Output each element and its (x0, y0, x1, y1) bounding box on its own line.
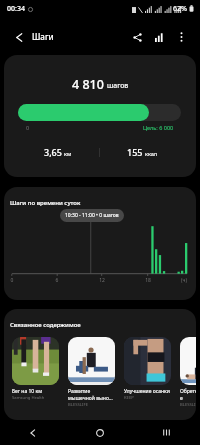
staticText: 18 (140, 277, 156, 284)
staticText: 0 (4, 277, 20, 284)
staticText: 10:30 - 11:00 • 0 шагов (65, 212, 119, 219)
button[interactable]: Развитие мышечной вынос... (68, 337, 115, 408)
staticText: BLESSLIFE (68, 402, 88, 408)
staticText: Samsung Health (12, 395, 45, 401)
staticText: (ч) (176, 277, 192, 284)
button[interactable]: More options (172, 28, 190, 46)
button[interactable]: Шаги по времени суток (4, 187, 196, 300)
staticText: 4 810 (72, 76, 104, 93)
staticText: 12 (94, 277, 110, 284)
staticText: ккал (145, 150, 158, 157)
button[interactable]: 4 810 (4, 55, 196, 177)
button[interactable]: Back (10, 28, 28, 46)
button[interactable]: Home (66, 420, 133, 445)
staticText: 3,65 (44, 146, 62, 158)
staticText: Развитие мышечной вынос... (68, 388, 115, 402)
button[interactable]: Recent apps (133, 420, 200, 445)
staticText: шагов (107, 81, 129, 91)
staticText: Шаги (32, 31, 54, 42)
staticText: Улучшение осанки (124, 388, 170, 395)
staticText: Шаги по времени суток (10, 199, 81, 207)
button[interactable]: Back (0, 420, 66, 445)
staticText: 62% (173, 4, 187, 14)
staticText: 0 (26, 124, 30, 131)
button[interactable]: Обретение стройности... (180, 337, 196, 408)
staticText: 00:34 (7, 4, 25, 14)
staticText: Бег на 10 км (12, 388, 42, 395)
button[interactable]: Share (128, 28, 146, 46)
staticText: KEEP (124, 395, 134, 401)
staticText: BLESSLIFE (180, 402, 196, 408)
staticText: 155 (127, 146, 143, 158)
button[interactable]: Улучшение осанки (124, 337, 171, 401)
staticText: Обретение стройности... (180, 388, 196, 402)
button[interactable]: Бег на 10 км (12, 337, 59, 401)
staticText: км (64, 150, 72, 157)
staticText: 6 (49, 277, 65, 284)
staticText: Цель: 6 000 (143, 124, 174, 131)
staticText: Связанное содержимое (10, 321, 81, 329)
button[interactable]: Statistics (150, 28, 168, 46)
